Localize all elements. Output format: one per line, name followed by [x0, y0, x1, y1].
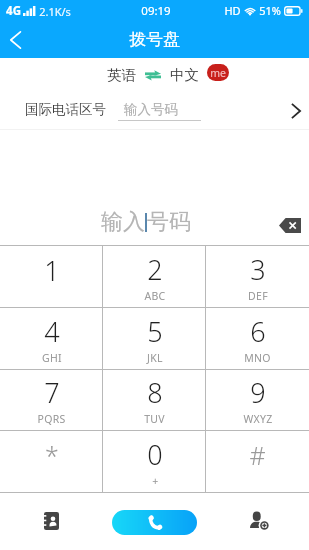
- button[interactable]: Call: [112, 510, 197, 535]
- staticText: 拨号盘: [129, 29, 180, 50]
- staticText: 9: [250, 374, 266, 411]
- staticText: MNO: [244, 351, 271, 365]
- staticText: *: [45, 438, 59, 472]
- staticText: 4: [44, 313, 60, 350]
- staticText: 4G: [6, 3, 21, 19]
- staticText: 8: [147, 374, 163, 411]
- staticText: TUV: [144, 412, 165, 426]
- staticText: 09:19: [141, 3, 171, 19]
- staticText: 输: [101, 208, 123, 236]
- button[interactable]: 1: [0, 246, 103, 307]
- staticText: 2: [147, 251, 163, 288]
- staticText: 5: [147, 313, 163, 350]
- staticText: 0: [147, 436, 163, 473]
- staticText: ABC: [144, 289, 166, 303]
- button[interactable]: Delete: [275, 210, 305, 240]
- staticText: HD: [224, 3, 241, 18]
- staticText: 6: [250, 313, 266, 350]
- staticText: PQRS: [37, 412, 66, 426]
- button[interactable]: 国际电话区号: [0, 92, 309, 129]
- staticText: 国际电话区号: [25, 101, 106, 118]
- staticText: DEF: [248, 289, 268, 303]
- button[interactable]: 2: [103, 246, 206, 307]
- staticText: 码: [169, 208, 191, 236]
- staticText: 1: [44, 252, 60, 289]
- staticText: #: [249, 438, 266, 472]
- staticText: JKL: [147, 351, 163, 365]
- button[interactable]: 5: [103, 308, 206, 369]
- button[interactable]: 6: [206, 308, 309, 369]
- button[interactable]: Add contact: [215, 493, 309, 550]
- staticText: me: [210, 66, 226, 80]
- button[interactable]: Back: [0, 21, 30, 58]
- staticText: 输入号码: [124, 101, 178, 118]
- button[interactable]: 8: [103, 370, 206, 430]
- button[interactable]: 7: [0, 370, 103, 430]
- button[interactable]: 0: [103, 431, 206, 492]
- staticText: +: [152, 474, 159, 488]
- staticText: 3: [250, 251, 266, 288]
- staticText: 号: [147, 208, 169, 236]
- staticText: WXYZ: [243, 412, 273, 426]
- staticText: GHI: [42, 351, 62, 365]
- staticText: 入: [123, 208, 145, 236]
- staticText: 英语: [107, 66, 136, 84]
- staticText: 7: [44, 374, 60, 411]
- staticText: 51%: [259, 3, 281, 18]
- staticText: 2.1K/s: [39, 4, 71, 19]
- button[interactable]: 英语: [107, 66, 199, 84]
- button[interactable]: #: [206, 431, 309, 492]
- button[interactable]: 3: [206, 246, 309, 307]
- staticText: 中文: [170, 66, 199, 84]
- button[interactable]: 9: [206, 370, 309, 430]
- button[interactable]: *: [0, 431, 103, 492]
- button[interactable]: 4: [0, 308, 103, 369]
- button[interactable]: Contacts: [0, 493, 93, 550]
- button[interactable]: me: [207, 64, 229, 81]
